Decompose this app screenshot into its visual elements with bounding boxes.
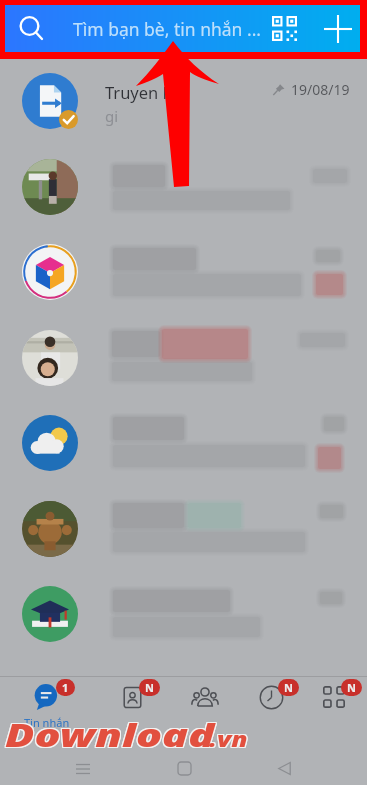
button[interactable]: More — [302, 676, 366, 738]
button[interactable]: Home — [167, 752, 201, 785]
button[interactable]: Groups — [173, 676, 237, 738]
staticText: .vn — [209, 724, 248, 753]
staticText: Download — [5, 714, 215, 758]
button[interactable]: Timeline — [239, 676, 303, 738]
staticText: gi — [105, 106, 119, 126]
staticText: Truyen File — [105, 81, 189, 103]
staticText: N — [284, 680, 293, 695]
staticText: N — [347, 680, 356, 695]
staticText: Download — [5, 712, 215, 756]
button[interactable]: Contacts — [100, 676, 164, 738]
button[interactable] — [0, 572, 367, 658]
button[interactable]: Search — [5, 5, 360, 52]
staticText: Download — [6, 714, 216, 758]
staticText: Tìm bạn bè, tin nhắn ... — [73, 17, 262, 41]
staticText: 19/08/19 — [291, 80, 350, 99]
staticText: 1 — [62, 680, 69, 695]
staticText: N — [145, 680, 154, 695]
staticText: Download — [6, 713, 216, 757]
staticText: .vn — [208, 726, 247, 755]
other: Search — [9, 5, 53, 52]
button[interactable]: Add — [316, 5, 360, 52]
staticText: Tin nhắn — [24, 715, 70, 730]
button[interactable]: Back — [267, 752, 301, 785]
staticText: .vn — [208, 725, 247, 754]
staticText: .vn — [210, 725, 249, 754]
button[interactable]: Scan QR code — [262, 5, 306, 52]
button[interactable]: Truyen File — [0, 59, 367, 145]
button[interactable] — [0, 401, 367, 487]
button[interactable]: Messages — [15, 676, 79, 738]
button[interactable] — [0, 316, 367, 402]
staticText: .vn — [209, 726, 248, 755]
staticText: Download — [4, 712, 214, 756]
button[interactable]: Recent apps — [66, 752, 100, 785]
staticText: Download — [4, 713, 214, 757]
staticText: .vn — [209, 725, 248, 754]
button[interactable] — [0, 487, 367, 573]
staticText: Download — [5, 713, 215, 757]
staticText: .vn — [210, 726, 249, 755]
staticText: .vn — [210, 724, 249, 753]
staticText: Download — [4, 714, 214, 758]
button[interactable] — [0, 230, 367, 316]
staticText: .vn — [208, 724, 247, 753]
button[interactable] — [0, 145, 367, 231]
staticText: Download — [6, 712, 216, 756]
